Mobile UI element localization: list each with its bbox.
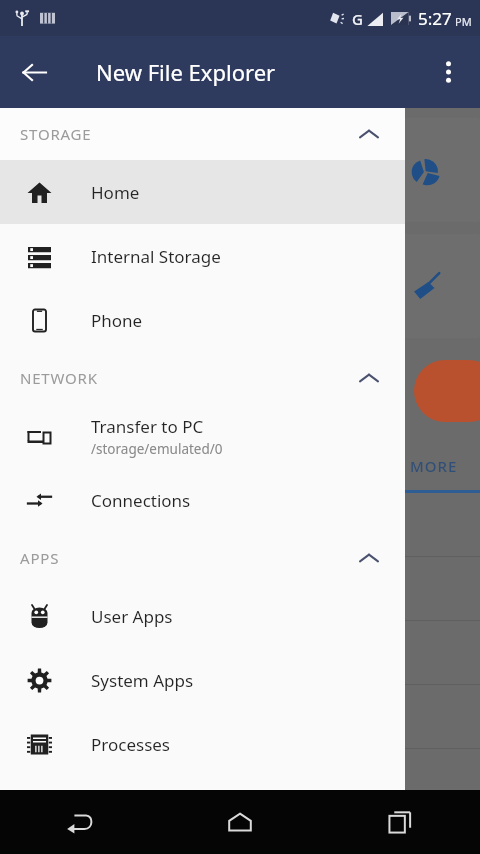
button[interactable]: User Apps xyxy=(0,584,405,648)
button[interactable]: Back xyxy=(10,48,58,96)
staticText: APPS xyxy=(20,548,60,568)
button[interactable]: Processes xyxy=(0,712,405,776)
staticText: Phone xyxy=(91,309,143,332)
staticText: STORAGE xyxy=(20,124,92,144)
staticText: Processes xyxy=(91,733,171,756)
staticText: PM xyxy=(455,14,472,29)
staticText: New File Explorer xyxy=(96,57,276,87)
staticText: MORE xyxy=(410,456,458,476)
staticText: 5:27 xyxy=(418,7,452,30)
button[interactable]: Connections xyxy=(0,468,405,532)
staticText: G xyxy=(352,9,363,29)
staticText: Transfer to PC xyxy=(91,415,204,438)
button[interactable]: NETWORK xyxy=(0,352,405,404)
button[interactable]: Home xyxy=(160,790,320,854)
staticText: Internal Storage xyxy=(91,245,221,268)
button[interactable]: Home xyxy=(0,160,405,224)
button[interactable]: System Apps xyxy=(0,648,405,712)
staticText: System Apps xyxy=(91,669,194,692)
button[interactable]: APPS xyxy=(0,532,405,584)
staticText: Connections xyxy=(91,489,191,512)
button[interactable]: Internal Storage xyxy=(0,224,405,288)
button[interactable]: Phone xyxy=(0,288,405,352)
staticText: NETWORK xyxy=(20,368,98,388)
button[interactable]: More options xyxy=(424,48,472,96)
button[interactable]: STORAGE xyxy=(0,108,405,160)
staticText: /storage/emulated/0 xyxy=(91,440,223,458)
staticText: User Apps xyxy=(91,605,173,628)
button[interactable]: Transfer to PC xyxy=(0,404,405,468)
staticText: Home xyxy=(91,181,140,204)
button[interactable]: Back xyxy=(0,790,160,854)
button[interactable]: Recent apps xyxy=(320,790,480,854)
